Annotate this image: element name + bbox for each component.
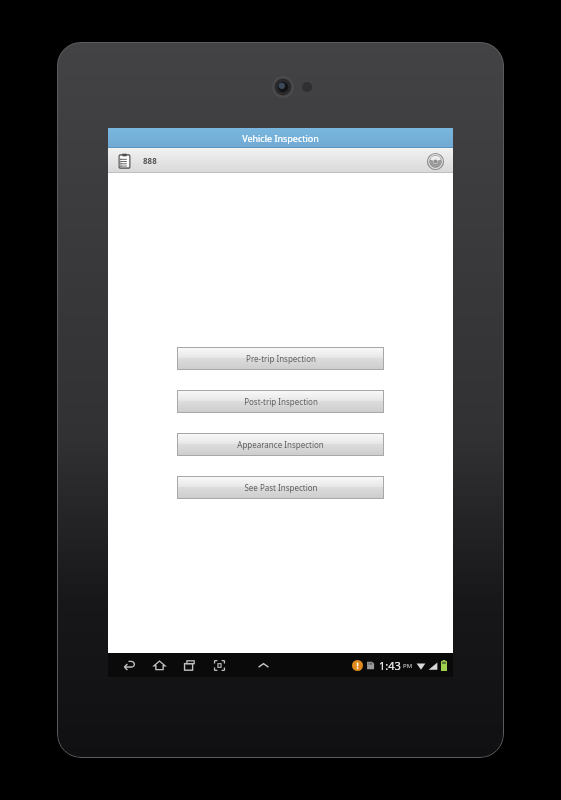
button[interactable]: Recent apps <box>178 654 200 676</box>
staticText: Post-trip Inspection <box>244 396 318 407</box>
staticText: Vehicle Inspection <box>242 132 319 144</box>
staticText: See Past Inspection <box>244 482 318 493</box>
button[interactable]: Vehicle <box>425 151 445 171</box>
staticText: 1:43 <box>379 658 401 673</box>
staticText: PM <box>403 662 413 670</box>
button[interactable]: Back <box>118 654 140 676</box>
button[interactable]: See Past Inspection <box>177 476 384 499</box>
button[interactable]: Expand <box>252 654 274 676</box>
button[interactable]: Post-trip Inspection <box>177 390 384 413</box>
button[interactable]: Screenshot <box>208 654 230 676</box>
button[interactable]: Home <box>148 654 170 676</box>
button[interactable]: Inspection list <box>114 151 134 171</box>
staticText: 888 <box>143 155 157 166</box>
button[interactable]: Appearance Inspection <box>177 433 384 456</box>
button[interactable]: Pre-trip Inspection <box>177 347 384 370</box>
staticText: Appearance Inspection <box>237 439 324 450</box>
staticText: Pre-trip Inspection <box>246 353 316 364</box>
